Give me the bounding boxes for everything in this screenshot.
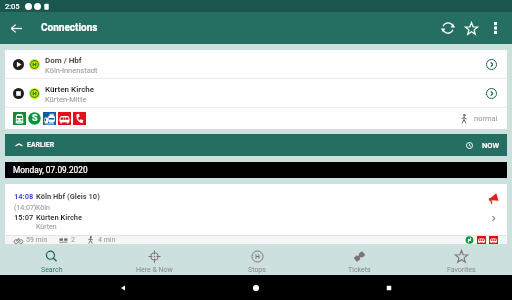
staticText: Connections	[41, 22, 98, 34]
staticText: EARLIER	[27, 141, 55, 149]
button[interactable]: Kürten Kirche	[5, 79, 507, 107]
staticText: Köln	[36, 204, 50, 212]
button[interactable]: Stops	[206, 244, 308, 275]
button[interactable]: S-Bahn	[28, 112, 41, 125]
staticText: 59 min	[26, 236, 48, 244]
button[interactable]: Tickets	[308, 244, 410, 275]
staticText: Here & Now	[136, 266, 173, 274]
staticText: Kürten Kirche	[45, 85, 95, 94]
staticText: 14:08	[14, 192, 34, 201]
button[interactable]: Bus	[58, 112, 71, 125]
staticText: Kürten-Mitte	[45, 95, 87, 104]
button[interactable]: Search	[0, 244, 103, 275]
staticText: Monday, 07.09.2020	[13, 165, 88, 175]
button[interactable]: Recent apps	[379, 278, 399, 298]
staticText: 2:05	[5, 2, 20, 11]
button[interactable]: Train	[13, 112, 26, 125]
staticText: Kürten	[36, 223, 57, 231]
staticText: normal	[474, 114, 498, 123]
staticText: 4 min	[98, 236, 116, 244]
staticText: Tickets	[348, 266, 371, 274]
button[interactable]: Back	[113, 278, 133, 298]
button[interactable]: Back	[0, 12, 32, 44]
staticText: Köln Hbf (Gleis 10)	[36, 192, 100, 201]
staticText: NOW	[482, 141, 500, 150]
button[interactable]: EARLIER	[5, 134, 507, 156]
button[interactable]: Here & Now	[103, 244, 206, 275]
button[interactable]: 14:08	[5, 184, 507, 244]
button[interactable]: Tram	[43, 112, 56, 125]
staticText: Favorites	[447, 266, 476, 274]
staticText: Dom / Hbf	[45, 56, 82, 65]
button[interactable]: Refresh	[436, 13, 459, 43]
button[interactable]: Open stop details	[482, 55, 500, 73]
button[interactable]: Favorites	[410, 244, 512, 275]
button[interactable]: Home	[246, 278, 266, 298]
staticText: S	[32, 113, 38, 124]
button[interactable]: Dom / Hbf	[5, 50, 507, 78]
button[interactable]: More options	[483, 13, 507, 43]
staticText: 2	[71, 236, 75, 244]
button[interactable]: Add to favourites	[459, 13, 483, 43]
staticText: Köln-Innenstadt	[45, 66, 98, 75]
button[interactable]: Open stop details	[482, 84, 500, 102]
staticText: (14:07)	[14, 204, 36, 212]
staticText: 15:07	[14, 213, 34, 222]
button[interactable]: Call bus	[73, 112, 86, 125]
staticText: Stops	[248, 266, 266, 274]
staticText: Search	[41, 266, 63, 274]
staticText: Kürten Kirche	[36, 213, 83, 222]
